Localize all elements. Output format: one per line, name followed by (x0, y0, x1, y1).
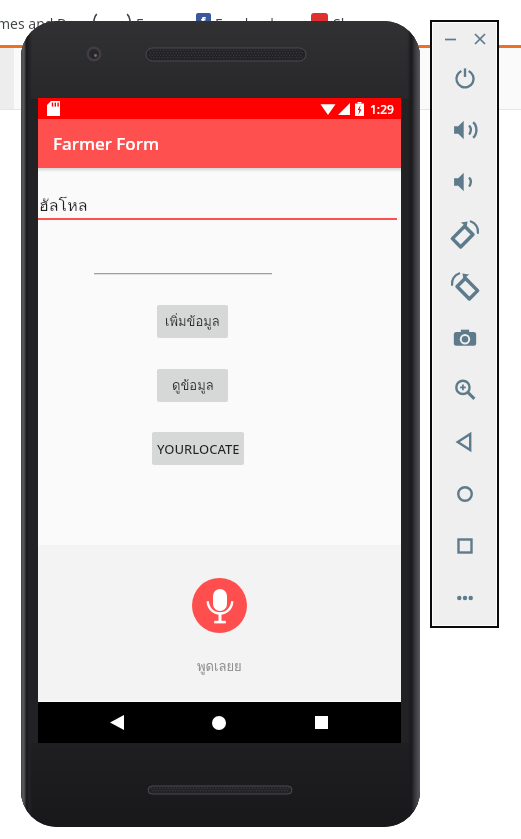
button[interactable]: Rotate right (433, 266, 496, 306)
button[interactable]: Home (197, 702, 241, 743)
button[interactable]: Back (433, 422, 496, 462)
button[interactable]: Home (433, 474, 496, 514)
staticText: Facebook (215, 14, 278, 33)
button[interactable]: Speak (192, 578, 247, 633)
staticText: เพิ่มข้อมูล (165, 311, 220, 332)
staticText: ฮัลโหล (39, 193, 88, 218)
button[interactable]: Take screenshot (433, 318, 496, 358)
button[interactable]: Zoom (433, 370, 496, 410)
button[interactable]: Volume down (433, 162, 496, 202)
staticText: F (136, 14, 144, 33)
button[interactable]: Power (433, 58, 496, 98)
staticText: Sk app (333, 14, 381, 33)
button[interactable]: Overview (433, 526, 496, 566)
button[interactable]: Recents (299, 702, 343, 743)
button[interactable]: ดูข้อมูล (157, 369, 228, 402)
button[interactable]: More (433, 578, 496, 618)
button[interactable]: Rotate left (433, 214, 496, 254)
button[interactable]: Volume up (433, 110, 496, 150)
button[interactable]: Back (95, 702, 139, 743)
staticText: Farmer Form (53, 132, 160, 155)
button[interactable]: Minimize (439, 28, 461, 50)
staticText: พูดเลยย (197, 656, 242, 677)
button[interactable]: YOURLOCATE (152, 432, 244, 465)
staticText: f (201, 13, 206, 28)
button[interactable]: Close (469, 28, 491, 50)
button[interactable]: เพิ่มข้อมูล (157, 305, 228, 338)
staticText: 1:29 (370, 101, 394, 117)
staticText: mes and B (0, 14, 67, 33)
staticText: ดูข้อมูล (172, 375, 214, 396)
staticText: YOURLOCATE (157, 440, 240, 458)
